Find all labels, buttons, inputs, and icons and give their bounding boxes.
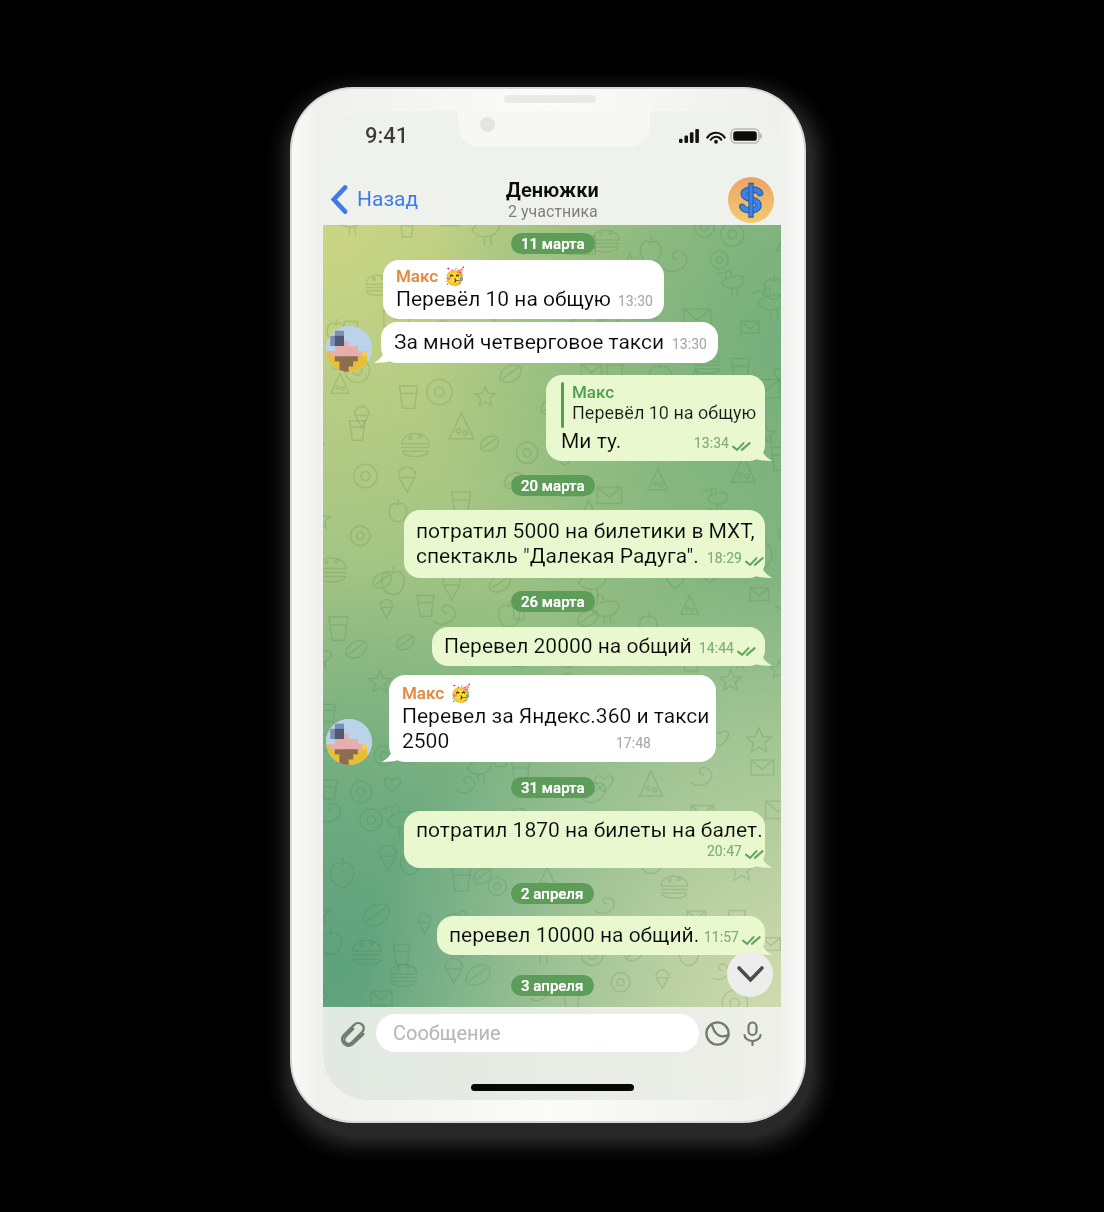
staticText: 🥳 [444,266,466,286]
button[interactable]: Прикрепить файл [335,1015,371,1051]
button[interactable]: Прокрутить вниз [727,951,773,997]
staticText: 18:29 [707,550,742,566]
staticText: потратил 1870 на билеты на балет. [416,818,763,843]
button[interactable]: 20 марта [511,475,595,496]
staticText: 13:34 [694,435,729,451]
staticText: Перевел 20000 на общий [444,634,692,659]
button[interactable]: За мной четверговое такси [381,322,718,363]
staticText: Перевел за Яндекс.360 и такси [402,704,710,729]
button[interactable]: Макс [389,675,716,762]
staticText: 13:30 [618,293,653,309]
staticText: Сообщение [393,1021,501,1044]
button[interactable]: 2 апреля [511,883,594,904]
staticText: 2 апреля [521,885,584,903]
staticText: Перевёл 10 на общую [396,287,611,312]
button[interactable]: Голосовое сообщение [738,1019,766,1047]
staticText: 14:44 [699,640,734,656]
staticText: 2500 [402,729,450,754]
staticText: Денюжки [506,178,599,201]
staticText: 3 апреля [521,977,584,995]
staticText: 13:30 [672,336,707,352]
button[interactable]: Макс [546,375,765,461]
button[interactable]: Стикеры [702,1018,732,1048]
staticText: Макс [396,266,439,286]
staticText: спектакль "Далекая Радуга". [416,544,699,569]
staticText: потратил 5000 на билетики в МХТ, [416,519,755,544]
staticText: перевел 10000 на общий. [449,923,700,948]
button[interactable]: Перевел 20000 на общий [432,627,765,666]
button[interactable]: 26 марта [511,591,595,612]
button[interactable]: Профиль чата [728,177,774,223]
staticText: 20 марта [521,477,585,495]
button[interactable]: 3 апреля [511,975,594,996]
staticText: 17:48 [616,735,651,751]
button[interactable]: 31 марта [511,777,595,798]
staticText: 26 марта [521,593,585,611]
button[interactable]: Назад [323,180,427,219]
staticText: 20:47 [707,843,742,859]
button[interactable]: 11 марта [511,233,595,254]
staticText: Назад [357,187,419,212]
staticText: Ми ту. [561,429,622,454]
staticText: 2 участника [508,202,598,221]
staticText: За мной четверговое такси [394,330,665,355]
staticText: 11 марта [521,235,585,253]
staticText: 9:41 [365,123,409,149]
button[interactable]: Сообщение [376,1014,699,1052]
staticText: 31 марта [521,779,585,797]
staticText: 🥳 [450,683,472,703]
staticText: Перевёл 10 на общую [572,402,757,423]
staticText: 11:57 [704,929,739,945]
staticText: Макс [402,683,445,703]
staticText: Макс [572,382,615,402]
button[interactable]: перевел 10000 на общий. [437,916,765,955]
button[interactable]: потратил 5000 на билетики в МХТ, [404,510,765,578]
button[interactable]: потратил 1870 на билеты на балет. [404,811,765,868]
button[interactable]: Макс [383,260,664,319]
